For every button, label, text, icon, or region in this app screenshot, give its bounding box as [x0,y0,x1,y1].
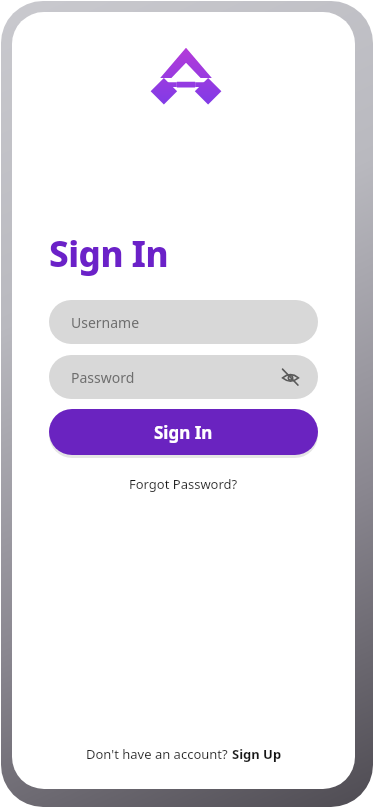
button[interactable]: Sign In [49,409,318,455]
staticText: Sign Up [232,745,282,763]
staticText: Sign In [49,230,169,278]
button[interactable]: Password [49,355,318,399]
staticText: Don't have an account? [86,745,232,763]
staticText: Password [71,368,135,387]
button[interactable]: Forgot Password? [121,471,246,497]
staticText: Sign In [154,421,213,444]
staticText: Forgot Password? [129,475,238,493]
button[interactable]: Username [49,300,318,344]
button[interactable]: Don't have an account? [78,741,290,767]
button[interactable]: Toggle password visibility [278,365,302,389]
staticText: Username [71,313,140,332]
